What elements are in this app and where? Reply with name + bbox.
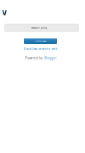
staticText: Blogger xyxy=(44,56,56,60)
staticText: Powered by xyxy=(25,56,43,60)
button[interactable]: Visualizza versione web xyxy=(0,47,81,51)
staticText: Visualizza versione web xyxy=(24,47,58,51)
staticText: Nessun post. xyxy=(31,26,48,29)
button[interactable]: Blogger xyxy=(44,56,56,60)
staticText: Home page xyxy=(35,39,46,43)
button[interactable]: Home page xyxy=(24,38,57,44)
